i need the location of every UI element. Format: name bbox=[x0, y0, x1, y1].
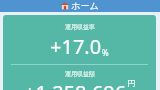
staticText: 運用収益額 bbox=[65, 70, 95, 78]
button[interactable]: Home bbox=[61, 0, 99, 11]
button[interactable]: 運用収益率 bbox=[3, 15, 156, 90]
staticText: ホーム bbox=[71, 0, 99, 11]
staticText: 円 bbox=[127, 78, 135, 88]
staticText: 運用収益率 bbox=[65, 23, 95, 31]
staticText: % bbox=[102, 47, 109, 58]
staticText: +17.0 bbox=[50, 33, 102, 60]
staticText: +1,258,696 bbox=[24, 79, 127, 90]
other: Home bbox=[61, 2, 69, 10]
